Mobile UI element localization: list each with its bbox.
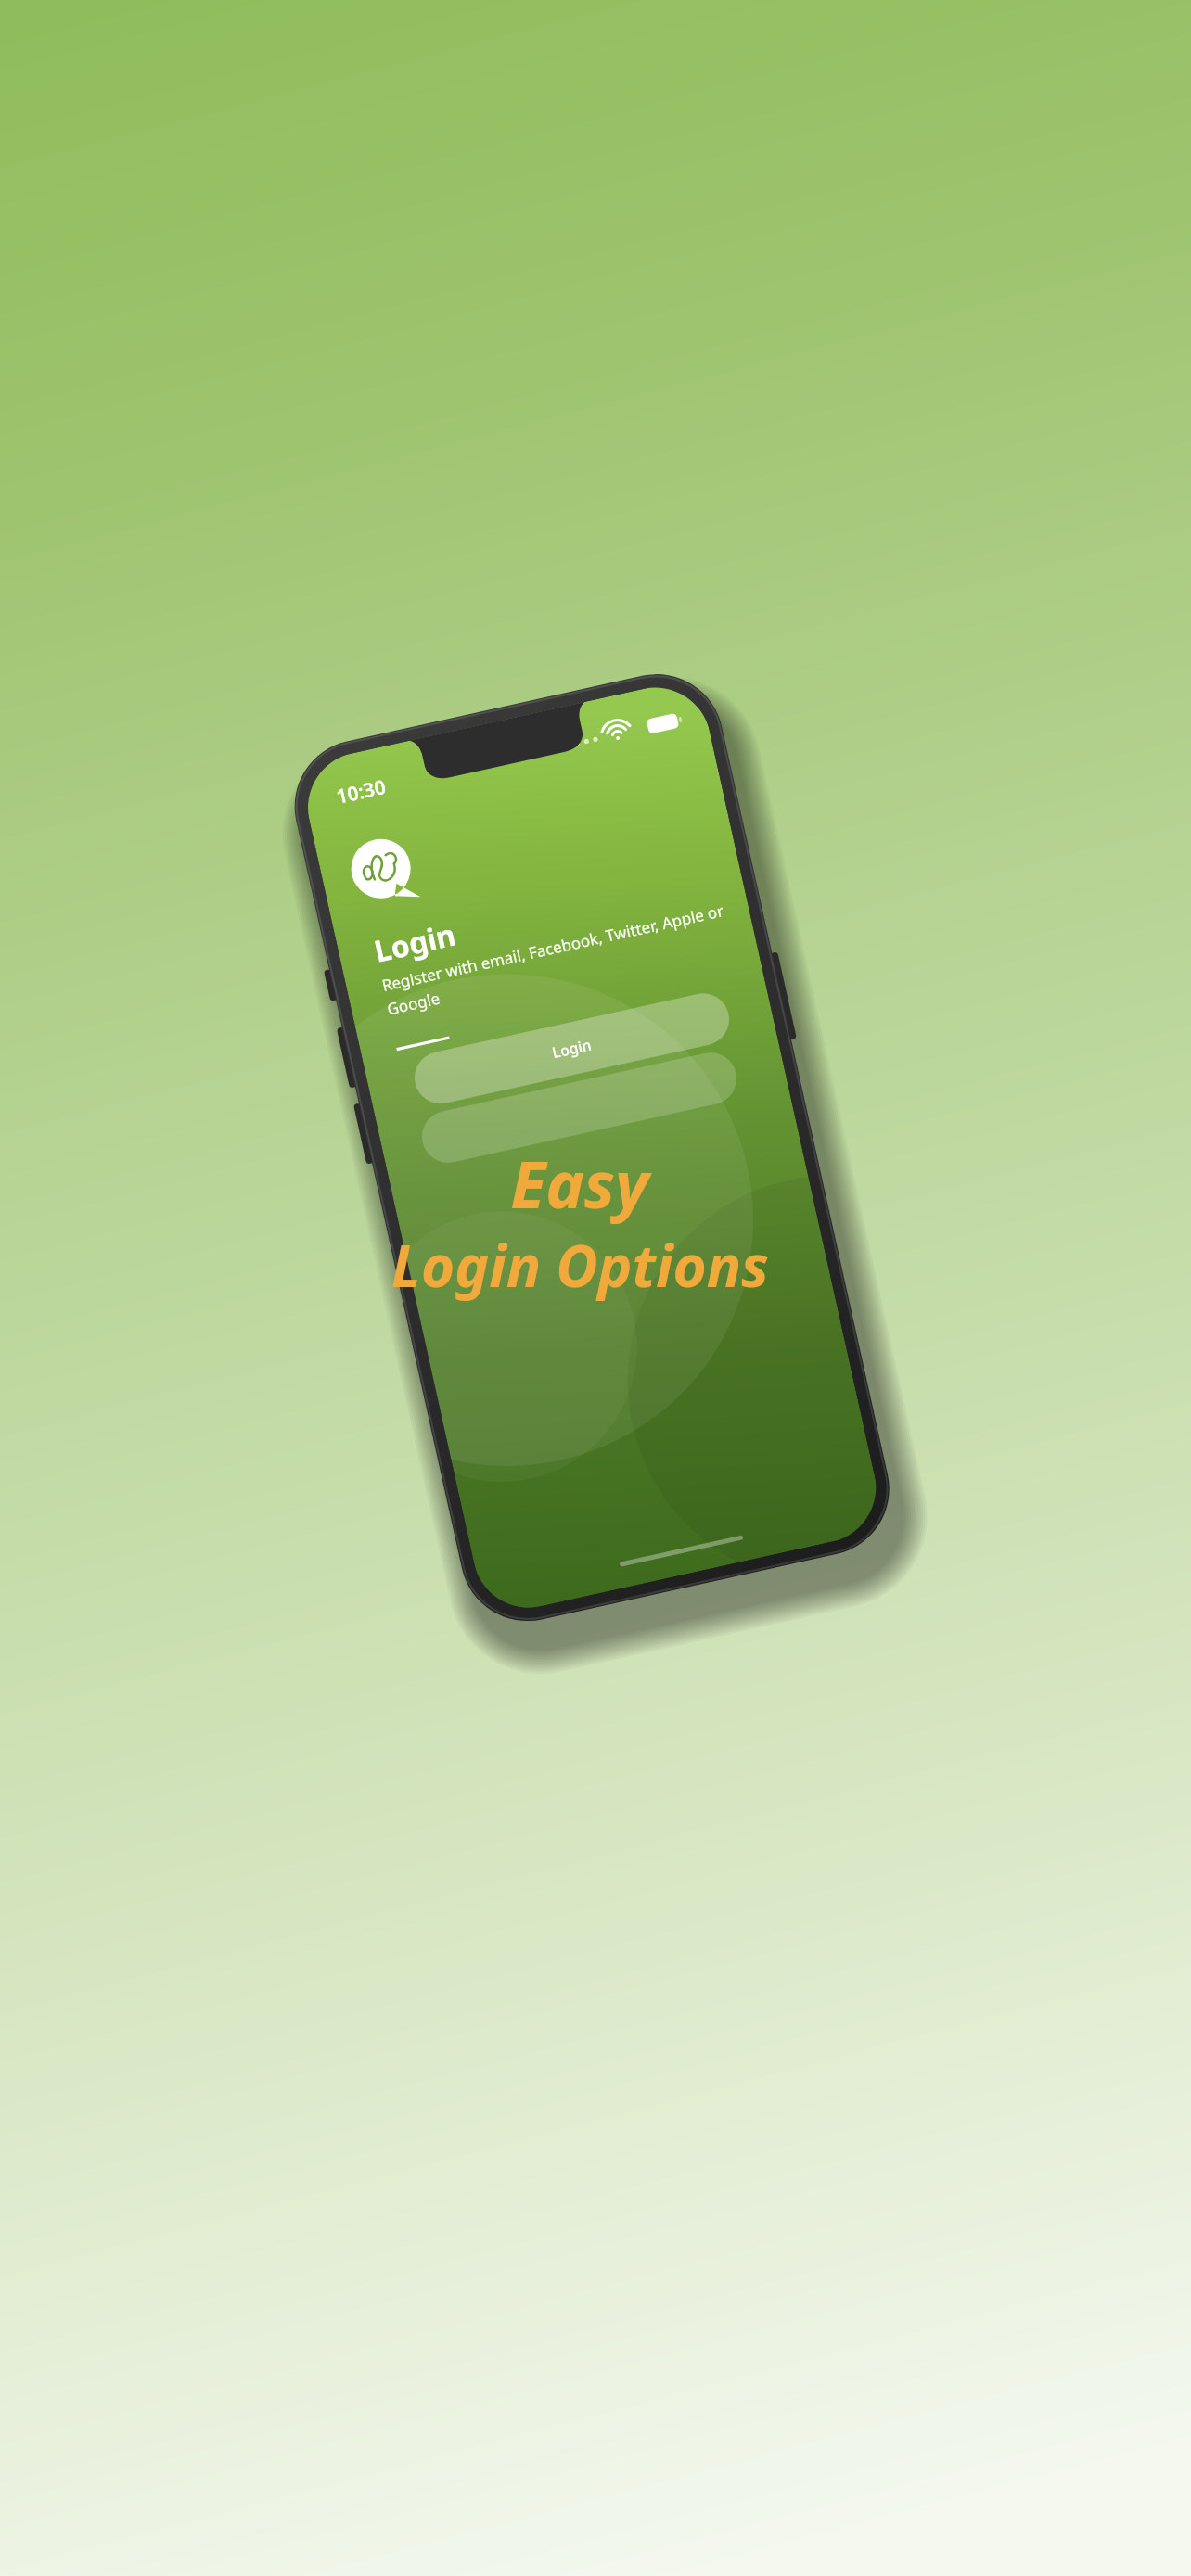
button[interactable]: Easy Login Options promotional screen (0, 0, 1191, 2576)
